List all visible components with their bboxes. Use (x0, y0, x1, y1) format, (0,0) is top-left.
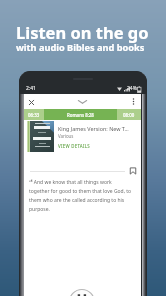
staticText: Listen on the go (16, 21, 149, 43)
button[interactable]: Bookmark (128, 166, 138, 176)
staticText: 08:00 (123, 112, 135, 118)
staticText: with audio Bibles and books (16, 41, 145, 54)
staticText: Romans 8:28 (67, 112, 94, 118)
staticText: 2:41 (26, 85, 36, 92)
staticText: King James Version: New T... (58, 125, 129, 132)
button[interactable]: King James Version: New T... (24, 121, 141, 152)
staticText: Various (58, 133, 74, 139)
staticText: ²⁸ And we know that all things work toge… (29, 179, 133, 213)
button[interactable]: Close (26, 97, 37, 108)
button[interactable]: Collapse player (76, 98, 89, 106)
staticText: VIEW DETAILS (58, 143, 90, 149)
button[interactable]: 06:33 (24, 109, 141, 120)
button[interactable]: More options (129, 97, 138, 106)
button[interactable]: Pause (68, 288, 96, 296)
staticText: 06:33 (28, 112, 40, 118)
staticText: 24% (127, 85, 137, 92)
